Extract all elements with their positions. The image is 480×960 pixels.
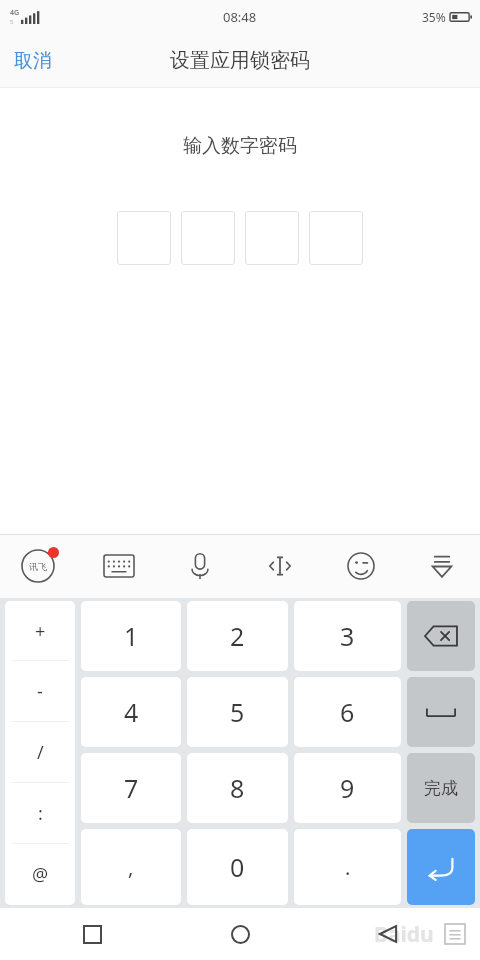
button[interactable] <box>181 211 235 265</box>
button[interactable]: + <box>5 601 75 661</box>
button[interactable]: 输入法 <box>14 542 62 590</box>
staticText: : <box>38 801 43 826</box>
staticText: 7 <box>124 771 139 805</box>
button[interactable]: . <box>294 829 401 905</box>
staticText: 5 <box>10 18 14 26</box>
button[interactable]: @ <box>5 844 75 905</box>
button[interactable]: - <box>5 661 75 722</box>
button[interactable]: 9 <box>294 753 401 823</box>
button[interactable]: : <box>5 783 75 844</box>
staticText: 5 <box>230 695 245 729</box>
button[interactable]: / <box>5 722 75 783</box>
button[interactable]: 返回 <box>366 912 410 956</box>
button[interactable]: 8 <box>187 753 288 823</box>
button[interactable]: 回车 <box>407 829 475 905</box>
button[interactable]: 4 <box>81 677 181 747</box>
staticText: 1 <box>124 619 139 653</box>
button[interactable] <box>245 211 299 265</box>
button[interactable]: 完成 <box>407 753 475 823</box>
staticText: 输入数字密码 <box>183 134 297 158</box>
staticText: Baidu <box>374 920 434 949</box>
button[interactable]: 键盘 <box>95 542 143 590</box>
button[interactable]: 取消 <box>0 41 66 81</box>
staticText: / <box>37 740 44 765</box>
staticText: . <box>345 854 351 881</box>
button[interactable]: 语音输入 <box>176 542 224 590</box>
button[interactable]: 移动光标 <box>256 542 304 590</box>
button[interactable]: 删除 <box>407 601 475 671</box>
button[interactable]: 0 <box>187 829 288 905</box>
staticText: 9 <box>340 771 355 805</box>
button[interactable]: 7 <box>81 753 181 823</box>
staticText: , <box>128 854 134 881</box>
button[interactable]: 6 <box>294 677 401 747</box>
button[interactable]: 1 <box>81 601 181 671</box>
button[interactable]: , <box>81 829 181 905</box>
button[interactable]: 收起键盘 <box>418 542 466 590</box>
button[interactable]: 表情 <box>337 542 385 590</box>
staticText: 取消 <box>14 49 52 73</box>
staticText: 4G <box>10 8 20 18</box>
staticText: 0 <box>230 850 245 884</box>
button[interactable] <box>309 211 363 265</box>
staticText: 4 <box>124 695 139 729</box>
staticText: 设置应用锁密码 <box>170 48 310 73</box>
staticText: 3 <box>340 619 355 653</box>
staticText: 完成 <box>424 778 458 799</box>
button[interactable]: 最近任务 <box>70 912 114 956</box>
button[interactable]: 空格 <box>407 677 475 747</box>
staticText: @ <box>32 862 49 887</box>
staticText: 6 <box>340 695 355 729</box>
staticText: + <box>35 619 46 644</box>
staticText: 35% <box>422 9 446 25</box>
staticText: 8 <box>230 771 245 805</box>
button[interactable]: 3 <box>294 601 401 671</box>
staticText: - <box>37 679 43 704</box>
staticText: 2 <box>230 619 245 653</box>
staticText: 讯飞 <box>29 561 47 572</box>
button[interactable] <box>117 211 171 265</box>
button[interactable]: 2 <box>187 601 288 671</box>
staticText: 08:48 <box>223 8 257 26</box>
button[interactable]: 5 <box>187 677 288 747</box>
button[interactable]: 笔记 <box>438 917 472 951</box>
button[interactable]: 主页 <box>218 912 262 956</box>
